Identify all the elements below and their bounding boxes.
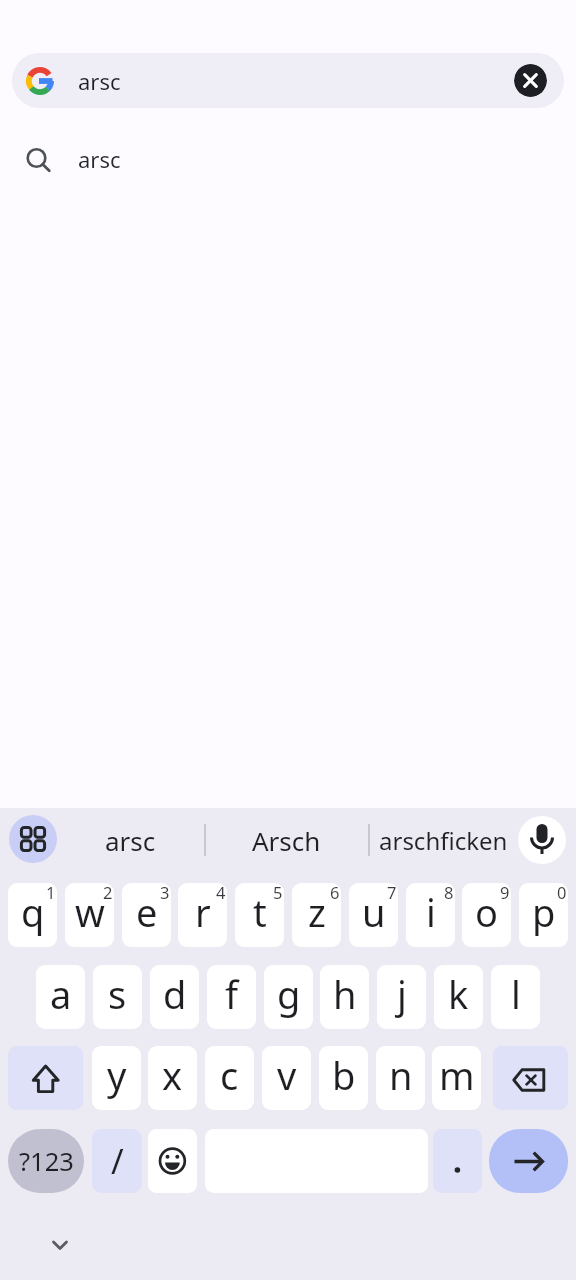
button[interactable]: arsc [12,53,564,108]
button[interactable] [44,1232,76,1258]
staticText: 5 [273,883,283,903]
button[interactable]: g [264,965,313,1029]
staticText: b [332,1049,356,1101]
button[interactable] [8,1046,83,1110]
staticText: c [220,1049,239,1101]
button[interactable]: f [207,965,256,1029]
staticText: v [277,1049,297,1101]
staticText: z [308,886,326,938]
button[interactable]: w [65,883,114,947]
button[interactable] [493,1046,568,1110]
button[interactable]: z [292,883,341,947]
staticText: d [163,968,187,1020]
staticText: Arsch [252,823,321,858]
staticText: 0 [557,883,567,903]
button[interactable]: j [377,965,426,1029]
button[interactable]: k [434,965,483,1029]
button[interactable]: x [148,1046,197,1110]
button[interactable]: v [262,1046,311,1110]
staticText: arsc [78,144,121,174]
staticText: i [426,886,436,938]
button[interactable]: m [432,1046,481,1110]
staticText: 2 [103,883,113,903]
staticText: k [448,968,469,1020]
button[interactable] [148,1129,197,1193]
button[interactable]: arschficken [368,812,518,868]
button[interactable]: d [150,965,199,1029]
staticText: h [333,968,357,1020]
staticText: arsc [105,823,156,858]
staticText: l [511,968,521,1020]
staticText: g [277,968,301,1020]
button[interactable] [9,815,57,863]
staticText: 4 [216,883,226,903]
button[interactable]: t [235,883,284,947]
staticText: ?123 [19,1144,74,1179]
button[interactable]: c [205,1046,254,1110]
button[interactable]: / [92,1129,142,1193]
button[interactable]: r [178,883,227,947]
button[interactable]: h [320,965,369,1029]
button[interactable]: ?123 [8,1129,84,1193]
button[interactable]: n [376,1046,425,1110]
staticText: x [162,1049,183,1101]
button[interactable]: s [93,965,142,1029]
staticText: 6 [330,883,340,903]
staticText: w [75,886,105,938]
button[interactable]: p [519,883,568,947]
button[interactable] [489,1129,568,1193]
button[interactable]: b [319,1046,368,1110]
staticText: f [225,968,239,1020]
staticText: arsc [78,66,121,96]
staticText: y [107,1049,127,1101]
staticText: 7 [387,883,397,903]
button[interactable]: u [349,883,398,947]
staticText: j [397,968,407,1020]
button[interactable] [433,1129,482,1193]
button[interactable]: e [122,883,171,947]
staticText: p [532,886,556,938]
staticText: u [362,886,386,938]
staticText: n [389,1049,413,1101]
button[interactable]: a [36,965,85,1029]
button[interactable]: i [406,883,455,947]
staticText: r [195,886,211,938]
button[interactable]: q [8,883,57,947]
staticText: / [111,1138,124,1184]
staticText: m [439,1049,475,1101]
staticText: 8 [444,883,454,903]
staticText: e [136,886,158,938]
button[interactable]: Arsch [204,812,368,868]
staticText: 3 [160,883,170,903]
staticText: 1 [46,883,56,903]
button[interactable]: arsc [57,812,204,868]
button[interactable] [518,816,566,864]
button[interactable]: l [491,965,540,1029]
button[interactable] [514,64,547,97]
staticText: o [475,886,498,938]
button[interactable]: arsc [0,131,576,187]
staticText: 9 [500,883,510,903]
button[interactable]: o [462,883,511,947]
staticText: arschficken [379,824,508,857]
staticText: t [253,886,267,938]
staticText: s [108,968,127,1020]
staticText: q [21,886,45,938]
staticText: a [50,968,72,1020]
button[interactable]: y [92,1046,141,1110]
